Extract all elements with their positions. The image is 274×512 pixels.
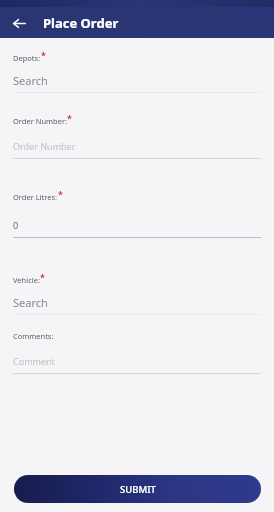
- button[interactable]: Order Number: [13, 134, 261, 160]
- staticText: Order Litres:: [13, 192, 58, 202]
- staticText: Depots:: [13, 53, 41, 63]
- staticText: *: [58, 188, 63, 200]
- staticText: Comment: [13, 355, 55, 367]
- staticText: Search: [13, 73, 48, 88]
- button[interactable]: Search: [13, 69, 261, 94]
- button[interactable]: Search: [13, 291, 261, 316]
- staticText: Order Number: [13, 140, 76, 152]
- button[interactable]: SUBMIT: [14, 475, 261, 503]
- staticText: 0: [13, 219, 19, 231]
- staticText: *: [40, 271, 45, 283]
- staticText: Search: [13, 295, 48, 310]
- staticText: Comments:: [13, 331, 54, 341]
- staticText: *: [41, 49, 46, 61]
- staticText: *: [67, 112, 72, 124]
- button[interactable]: Back: [6, 10, 32, 36]
- staticText: Vehicle:: [13, 275, 40, 285]
- button[interactable]: 0: [13, 213, 261, 239]
- button[interactable]: Comment: [13, 349, 261, 375]
- staticText: Place Order: [43, 14, 119, 32]
- staticText: Order Number:: [13, 116, 67, 126]
- staticText: SUBMIT: [120, 483, 156, 496]
